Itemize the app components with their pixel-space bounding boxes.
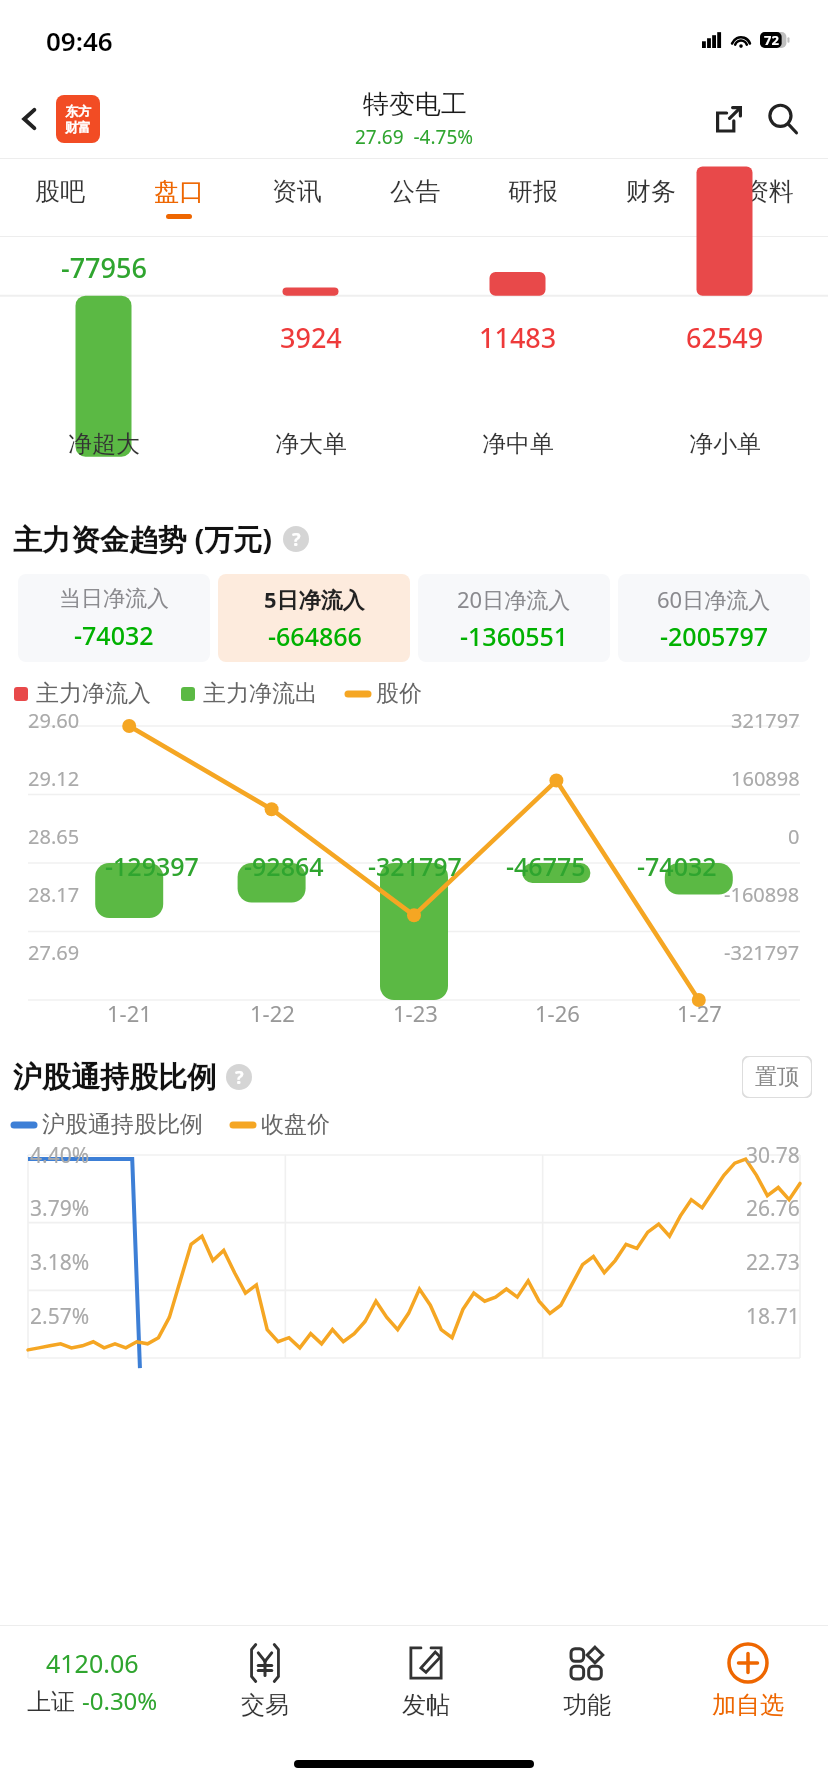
staticText: 收盘价 [261, 1110, 330, 1139]
staticText: -129397 [105, 849, 199, 883]
staticText: 3.79% [30, 1194, 90, 1223]
button[interactable]: 资料 [710, 158, 828, 236]
staticText: 研报 [508, 176, 558, 207]
staticText: 净超大 [68, 429, 140, 459]
button[interactable]: 盘口 [119, 158, 238, 236]
button[interactable]: 20日净流入 [418, 574, 610, 662]
staticText: 净小单 [689, 429, 761, 459]
staticText: 28.17 [28, 881, 80, 908]
staticText: 净大单 [275, 429, 347, 459]
staticText: -321797 [368, 849, 462, 883]
staticText: 18.71 [746, 1302, 800, 1331]
staticText: 加自选 [712, 1690, 784, 1720]
staticText: 当日净流入 [59, 585, 169, 613]
staticText: ? [235, 1065, 244, 1090]
staticText: -0.30% [82, 1684, 158, 1717]
staticText: -664866 [268, 619, 362, 653]
staticText: 3924 [280, 319, 342, 356]
button[interactable]: 股吧 [0, 158, 119, 236]
button[interactable]: 当日净流入 [18, 574, 210, 662]
button[interactable]: 帮助 [226, 1064, 252, 1090]
staticText: 11483 [479, 319, 557, 356]
staticText: 公告 [390, 176, 440, 207]
staticText: 60日净流入 [657, 584, 771, 614]
staticText: 沪股通持股比例 [13, 1059, 216, 1096]
button[interactable]: 5日净流入 [218, 574, 410, 662]
button[interactable]: 4120.06 [0, 1626, 184, 1736]
staticText: 27.69 [28, 939, 80, 966]
staticText: 1-27 [677, 998, 722, 1028]
staticText: 1-23 [393, 998, 438, 1028]
button[interactable]: 交易 [184, 1626, 345, 1736]
staticText: 交易 [241, 1690, 289, 1720]
staticText: -46775 [506, 849, 586, 883]
staticText: 72 [764, 31, 779, 49]
staticText: 净中单 [482, 429, 554, 459]
staticText: 09:46 [46, 23, 113, 58]
staticText: 资讯 [272, 176, 322, 207]
staticText: 1-22 [250, 998, 295, 1028]
button[interactable]: 公告 [356, 158, 474, 236]
staticText: 主力净流入 [36, 679, 151, 708]
staticText: 上证 [27, 1684, 82, 1717]
button[interactable]: 资讯 [238, 158, 356, 236]
button[interactable]: Search [756, 92, 810, 146]
staticText: 资料 [744, 176, 794, 207]
button[interactable]: 东方财富 [56, 95, 100, 143]
staticText: 股价 [376, 679, 422, 708]
staticText: 盘口 [154, 176, 204, 207]
staticText: 特变电工 [363, 88, 467, 121]
button[interactable]: Back [8, 97, 52, 141]
staticText: 30.78 [746, 1141, 800, 1170]
staticText: 财务 [626, 176, 676, 207]
staticText: 1-21 [107, 998, 152, 1028]
staticText: 财富 [65, 119, 91, 135]
staticText: -74032 [637, 849, 717, 883]
staticText: ? [292, 527, 301, 552]
staticText: 160898 [731, 765, 800, 792]
staticText: -74032 [74, 618, 154, 652]
staticText: 股吧 [35, 176, 85, 207]
staticText: 主力资金趋势 (万元) [13, 519, 273, 559]
staticText: 东方 [65, 103, 91, 119]
button[interactable]: 60日净流入 [618, 574, 810, 662]
staticText: 0 [788, 823, 800, 850]
staticText: 沪股通持股比例 [42, 1110, 203, 1139]
staticText: 20日净流入 [457, 584, 571, 614]
button[interactable]: 研报 [474, 158, 592, 236]
button[interactable]: 财务 [592, 158, 710, 236]
staticText: 27.69 -4.75% [355, 124, 474, 150]
staticText: 1-26 [535, 998, 580, 1028]
button[interactable]: 发帖 [345, 1626, 506, 1736]
staticText: 22.73 [746, 1248, 800, 1277]
staticText: 29.60 [28, 707, 80, 734]
button[interactable]: Share [702, 92, 756, 146]
staticText: 功能 [563, 1690, 611, 1720]
button[interactable]: 帮助 [283, 526, 309, 552]
staticText: -77956 [61, 249, 147, 286]
staticText: 主力净流出 [203, 679, 318, 708]
staticText: -321797 [724, 939, 800, 966]
staticText: 5日净流入 [264, 584, 365, 614]
staticText: 62549 [686, 319, 764, 356]
staticText: 2.57% [30, 1302, 90, 1331]
staticText: -2005797 [660, 619, 769, 653]
button[interactable]: 功能 [506, 1626, 667, 1736]
staticText: 321797 [731, 707, 800, 734]
staticText: 3.18% [30, 1248, 90, 1277]
staticText: 28.65 [28, 823, 80, 850]
button[interactable]: 加自选 [667, 1626, 828, 1736]
staticText: 26.76 [746, 1194, 800, 1223]
staticText: 置顶 [755, 1063, 799, 1091]
staticText: 发帖 [402, 1690, 450, 1720]
staticText: -1360551 [460, 619, 569, 653]
staticText: 4.40% [30, 1141, 90, 1170]
staticText: 4120.06 [46, 1646, 139, 1680]
button[interactable]: 置顶 [742, 1056, 812, 1098]
staticText: 29.12 [28, 765, 80, 792]
staticText: -160898 [724, 881, 800, 908]
staticText: -92864 [244, 849, 324, 883]
